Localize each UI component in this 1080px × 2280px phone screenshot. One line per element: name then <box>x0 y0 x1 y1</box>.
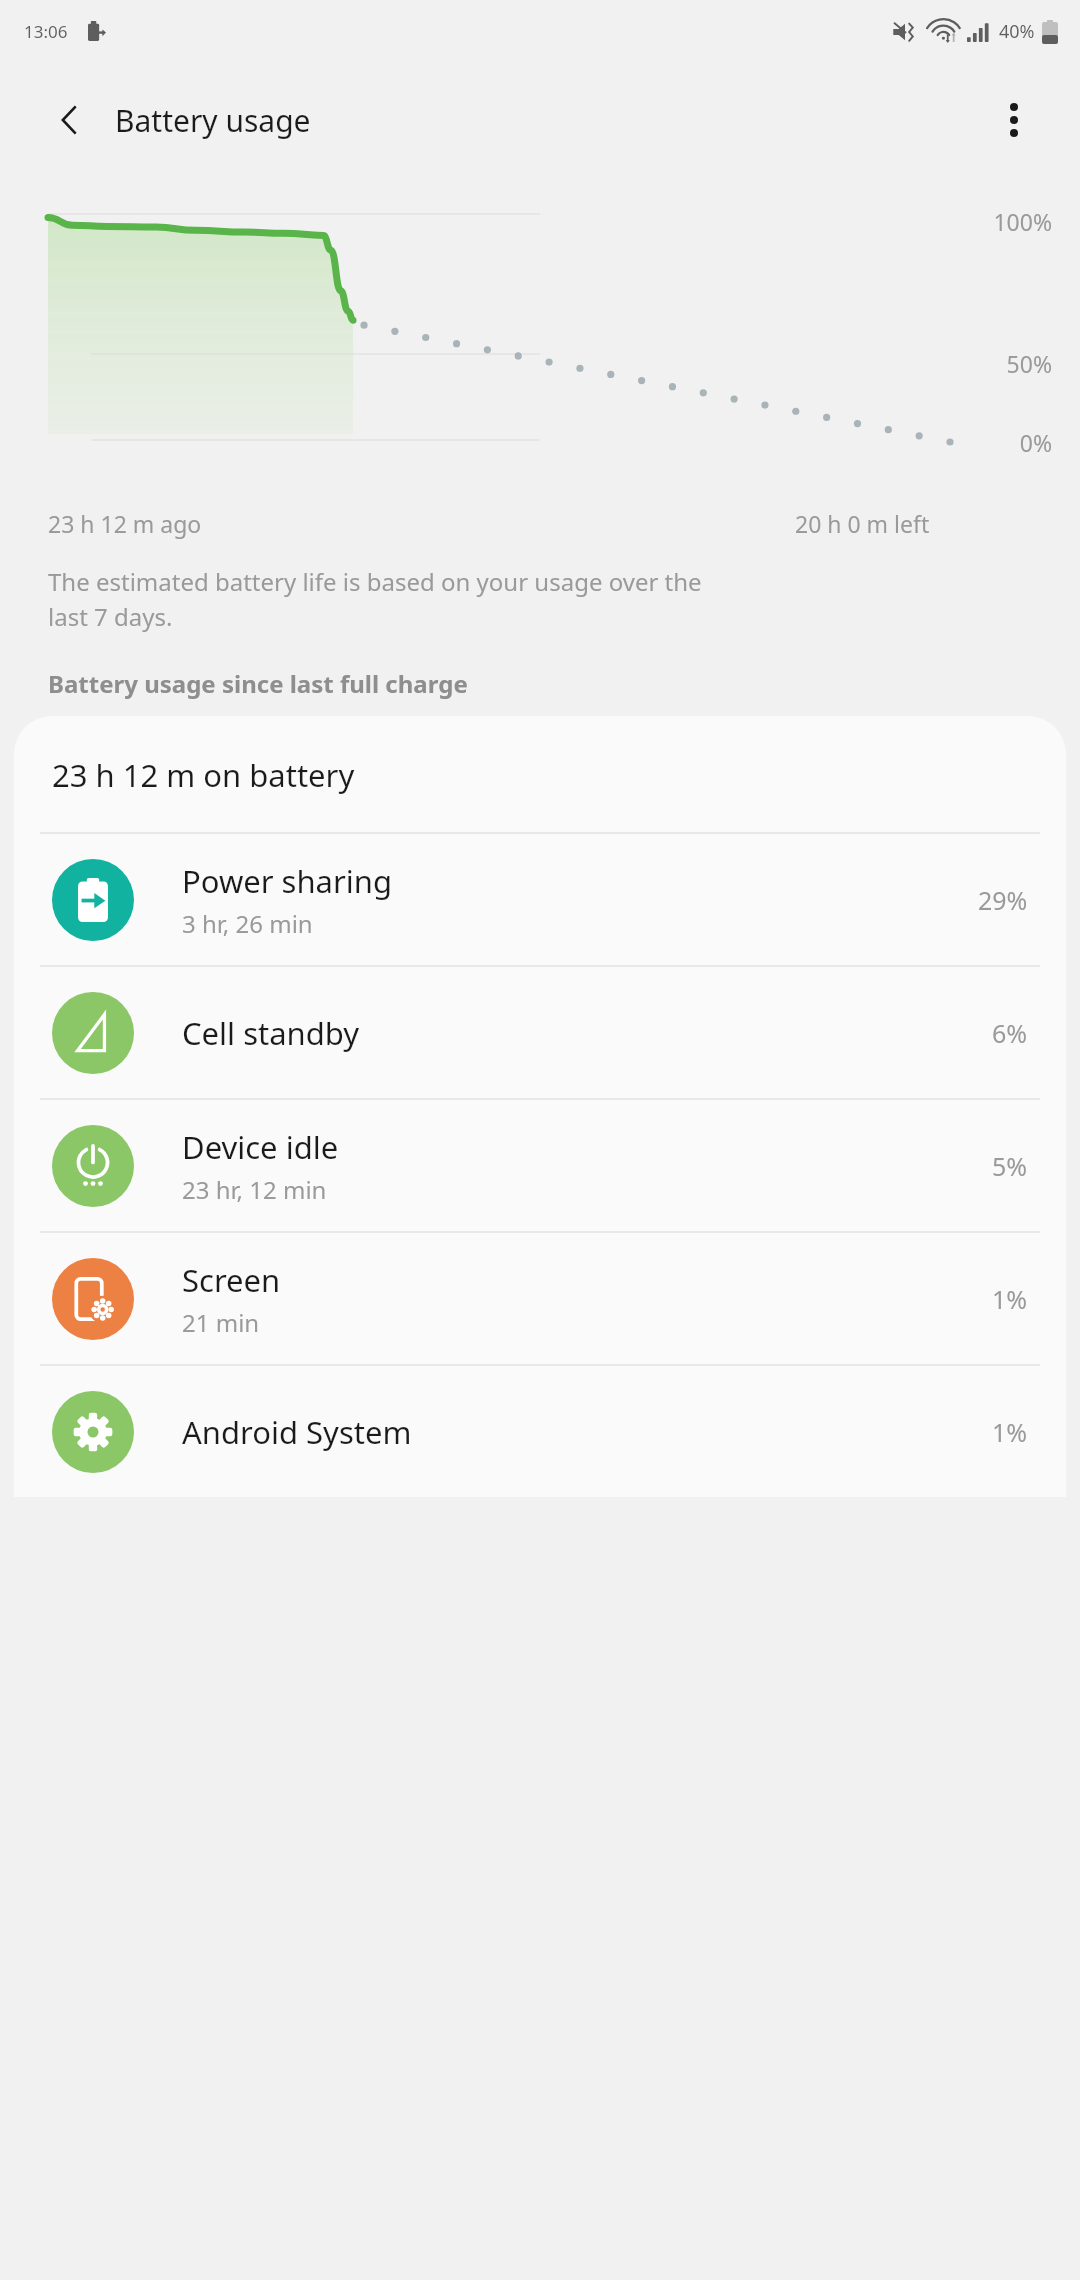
staticText: 6% <box>992 1016 1028 1050</box>
button[interactable]: Cell standby <box>14 967 1066 1098</box>
staticText: Power sharing <box>182 860 393 902</box>
staticText: 5% <box>992 1149 1028 1183</box>
button[interactable]: Android System <box>14 1366 1066 1497</box>
staticText: 21 min <box>182 1306 260 1339</box>
staticText: 23 h 12 m on battery <box>52 754 355 796</box>
staticText: Device idle <box>182 1126 339 1168</box>
staticText: 13:06 <box>24 20 68 43</box>
button[interactable]: Power sharing <box>14 834 1066 965</box>
staticText: 100% <box>993 206 1052 237</box>
staticText: 29% <box>978 883 1028 917</box>
staticText: 1% <box>992 1415 1028 1449</box>
staticText: 50% <box>1006 348 1052 379</box>
staticText: 40% <box>999 19 1035 44</box>
staticText: 0% <box>1019 427 1052 458</box>
staticText: 1% <box>992 1282 1028 1316</box>
button[interactable]: Back <box>44 94 96 146</box>
staticText: 23 h 12 m ago <box>48 508 202 539</box>
staticText: Cell standby <box>182 1012 360 1054</box>
staticText: 23 hr, 12 min <box>182 1173 327 1206</box>
staticText: 3 hr, 26 min <box>182 907 313 940</box>
staticText: 20 h 0 m left <box>795 508 930 539</box>
staticText: Battery usage since last full charge <box>48 667 468 700</box>
staticText: Screen <box>182 1259 281 1301</box>
button[interactable]: More options <box>988 94 1040 146</box>
staticText: Battery usage <box>115 100 311 141</box>
button[interactable]: Device idle <box>14 1100 1066 1231</box>
staticText: Android System <box>182 1411 412 1453</box>
staticText: The estimated battery life is based on y… <box>48 565 702 633</box>
button[interactable]: Screen <box>14 1233 1066 1364</box>
